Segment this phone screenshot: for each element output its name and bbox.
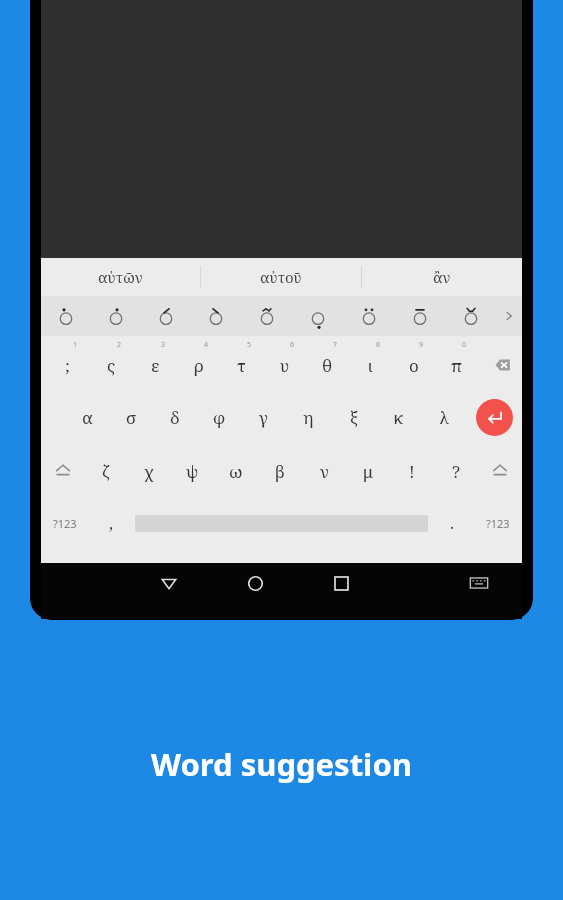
button[interactable]: 4 (177, 336, 220, 390)
staticText: ω (229, 460, 243, 483)
button[interactable]: δ (153, 390, 197, 444)
button[interactable]: γ (241, 390, 286, 444)
staticText: λ (439, 406, 449, 429)
button[interactable]: σ (109, 390, 153, 444)
button[interactable]: Backspace (478, 336, 522, 390)
button[interactable] (292, 296, 343, 336)
button[interactable]: ?123 (41, 498, 89, 548)
staticText: π (451, 354, 463, 377)
staticText: α (82, 406, 93, 429)
button[interactable]: ξ (331, 390, 376, 444)
button[interactable]: λ (421, 390, 466, 444)
staticText: υ (280, 354, 290, 377)
staticText: ; (65, 354, 70, 377)
staticText: 4 (204, 340, 209, 350)
button[interactable]: 2 (89, 336, 133, 390)
button[interactable]: ζ (84, 444, 127, 498)
button[interactable]: Enter (466, 390, 522, 444)
button[interactable]: μ (346, 444, 390, 498)
staticText: ἂν (433, 267, 451, 287)
staticText: η (303, 406, 314, 429)
staticText: 8 (376, 340, 381, 350)
button[interactable]: ?123 (474, 498, 522, 548)
staticText: σ (126, 406, 137, 429)
staticText: 1 (73, 340, 78, 350)
button[interactable]: More accents (496, 296, 522, 336)
button[interactable]: η (286, 390, 331, 444)
staticText: ι (368, 354, 373, 377)
staticText: ψ (186, 460, 199, 483)
staticText: 3 (161, 340, 166, 350)
staticText: τ (237, 354, 246, 377)
button[interactable]: Space (133, 498, 430, 548)
staticText: αὐτοῦ (260, 267, 302, 287)
staticText: θ (322, 354, 333, 377)
staticText: ! (409, 460, 415, 483)
button[interactable]: χ (127, 444, 170, 498)
staticText: ?123 (53, 516, 77, 531)
button[interactable]: β (258, 444, 302, 498)
staticText: αὐτῶν (98, 267, 143, 287)
button[interactable]: 8 (349, 336, 392, 390)
staticText: γ (259, 406, 268, 429)
button[interactable] (241, 296, 292, 336)
staticText: ξ (350, 406, 358, 429)
button[interactable]: 5 (220, 336, 263, 390)
button[interactable] (343, 296, 394, 336)
staticText: ρ (194, 354, 204, 377)
button[interactable]: κ (376, 390, 421, 444)
button[interactable]: ἂν (362, 258, 522, 296)
button[interactable]: Shift (41, 444, 84, 498)
button[interactable]: αὐτῶν (41, 258, 200, 296)
staticText: 9 (419, 340, 424, 350)
button[interactable]: Shift (478, 444, 522, 498)
staticText: ς (107, 354, 116, 377)
button[interactable]: . (430, 498, 474, 548)
button[interactable] (445, 296, 496, 336)
button[interactable]: 6 (263, 336, 306, 390)
staticText: ο (409, 354, 419, 377)
button[interactable]: αὐτοῦ (201, 258, 361, 296)
button[interactable]: ! (390, 444, 434, 498)
staticText: κ (394, 406, 404, 429)
button[interactable]: Switch keyboard (436, 563, 522, 603)
staticText: φ (213, 406, 226, 429)
staticText: 7 (333, 340, 338, 350)
staticText: δ (170, 406, 180, 429)
button[interactable] (394, 296, 445, 336)
button[interactable]: Recent apps (298, 563, 384, 603)
button[interactable]: 0 (435, 336, 478, 390)
staticText: 6 (290, 340, 295, 350)
staticText: ν (320, 460, 329, 483)
staticText: μ (363, 460, 373, 483)
staticText: , (109, 512, 114, 534)
button[interactable] (141, 296, 191, 336)
staticText: χ (144, 460, 154, 483)
button[interactable]: ν (302, 444, 346, 498)
staticText: ζ (102, 460, 110, 483)
button[interactable] (91, 296, 141, 336)
staticText: ε (151, 354, 160, 377)
button[interactable]: 7 (306, 336, 349, 390)
staticText: ? (452, 460, 461, 483)
button[interactable] (191, 296, 241, 336)
button[interactable]: Home (212, 563, 298, 603)
staticText: Word suggestion (151, 743, 412, 785)
button[interactable]: , (89, 498, 133, 548)
button[interactable]: ψ (170, 444, 214, 498)
staticText: β (275, 460, 285, 483)
staticText: 5 (247, 340, 252, 350)
staticText: . (450, 512, 455, 534)
button[interactable]: Back (126, 563, 212, 603)
button[interactable] (41, 296, 91, 336)
staticText: 2 (117, 340, 122, 350)
button[interactable]: ? (434, 444, 478, 498)
button[interactable]: 9 (392, 336, 435, 390)
button[interactable]: φ (197, 390, 241, 444)
button[interactable]: α (65, 390, 109, 444)
button[interactable]: ω (214, 444, 258, 498)
staticText: ?123 (486, 516, 510, 531)
button[interactable]: 3 (133, 336, 177, 390)
staticText: 0 (462, 340, 467, 350)
button[interactable]: 1 (45, 336, 89, 390)
